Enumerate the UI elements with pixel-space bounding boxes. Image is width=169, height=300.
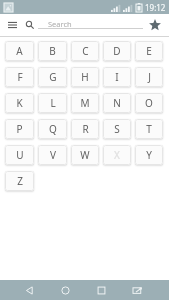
button[interactable]: E <box>135 41 163 61</box>
button[interactable]: K <box>5 93 34 113</box>
button[interactable]: Recent apps <box>91 280 111 300</box>
staticText: O <box>145 96 153 110</box>
button[interactable]: C <box>71 41 99 61</box>
button[interactable]: S <box>103 119 131 139</box>
button[interactable]: Q <box>38 119 67 139</box>
staticText: Search <box>48 19 72 29</box>
button[interactable]: I <box>103 67 131 87</box>
staticText: Z <box>17 174 23 188</box>
button[interactable]: A <box>5 41 34 61</box>
button[interactable]: O <box>135 93 163 113</box>
staticText: J <box>148 70 151 84</box>
button[interactable]: J <box>135 67 163 87</box>
staticText: N <box>113 96 121 110</box>
button[interactable]: Home <box>55 280 75 300</box>
button[interactable]: M <box>71 93 99 113</box>
staticText: F <box>17 70 23 84</box>
staticText: H <box>81 70 89 84</box>
button[interactable]: Y <box>135 145 163 165</box>
button[interactable]: U <box>5 145 34 165</box>
staticText: X <box>114 148 120 162</box>
button[interactable]: T <box>135 119 163 139</box>
staticText: M <box>80 96 90 110</box>
button[interactable]: W <box>71 145 99 165</box>
staticText: T <box>146 122 152 136</box>
button[interactable]: N <box>103 93 131 113</box>
button[interactable]: Back <box>19 280 39 300</box>
button[interactable]: F <box>5 67 34 87</box>
button[interactable]: B <box>38 41 67 61</box>
button[interactable]: Z <box>5 171 34 191</box>
button[interactable]: X <box>103 145 131 165</box>
staticText: E <box>146 44 152 58</box>
staticText: K <box>16 96 23 110</box>
staticText: W <box>80 148 90 162</box>
button[interactable]: Favorites <box>145 15 165 35</box>
button[interactable]: P <box>5 119 34 139</box>
staticText: G <box>49 70 57 84</box>
staticText: B <box>49 44 56 58</box>
button[interactable]: H <box>71 67 99 87</box>
button[interactable]: V <box>38 145 67 165</box>
staticText: S <box>114 122 120 136</box>
button[interactable]: Menu <box>2 15 22 35</box>
button[interactable]: D <box>103 41 131 61</box>
button[interactable]: L <box>38 93 67 113</box>
staticText: P <box>16 122 23 136</box>
staticText: I <box>115 70 119 84</box>
staticText: C <box>82 44 89 58</box>
button[interactable]: G <box>38 67 67 87</box>
staticText: V <box>50 148 56 162</box>
button[interactable]: Screenshot <box>127 280 147 300</box>
staticText: L <box>50 96 56 110</box>
staticText: 19:12 <box>145 2 166 13</box>
staticText: Y <box>146 148 152 162</box>
staticText: D <box>113 44 121 58</box>
staticText: Q <box>49 122 57 136</box>
staticText: R <box>82 122 89 136</box>
staticText: U <box>16 148 24 162</box>
staticText: A <box>16 44 23 58</box>
button[interactable]: R <box>71 119 99 139</box>
